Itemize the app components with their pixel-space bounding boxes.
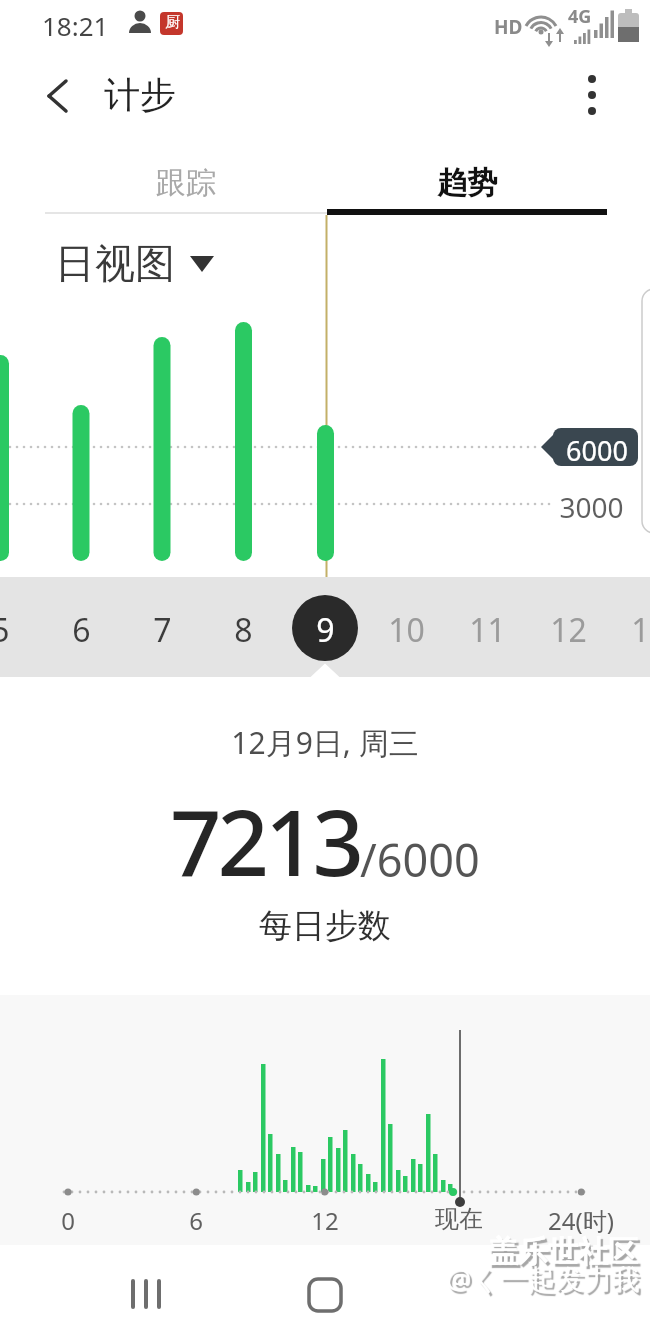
staticText: 7213 — [170, 780, 360, 900]
staticText: 5 — [0, 608, 10, 652]
button[interactable]: 9 — [303, 608, 347, 652]
button[interactable]: 11 — [465, 608, 509, 652]
button[interactable] — [100, 1265, 200, 1325]
button[interactable]: 7 — [140, 608, 184, 652]
staticText: 9 — [316, 608, 335, 652]
staticText: 3000 — [559, 488, 624, 526]
button[interactable] — [570, 70, 615, 122]
button[interactable]: 10 — [384, 608, 428, 652]
staticText: @く一起发力我 — [446, 1259, 640, 1297]
staticText: 盖乐世社区 — [488, 1233, 638, 1271]
staticText: 12 — [550, 608, 587, 652]
staticText: 24(时) — [548, 1204, 614, 1237]
staticText: 现在 — [435, 1204, 483, 1234]
staticText: 日视图 — [55, 238, 175, 288]
button[interactable]: 日视图 — [50, 236, 225, 286]
button[interactable]: 5 — [0, 608, 22, 652]
staticText: 8 — [234, 608, 253, 652]
staticText: 每日步数 — [259, 905, 391, 947]
staticText: 趋势 — [437, 164, 497, 202]
button[interactable] — [35, 70, 85, 122]
button[interactable]: 12 — [546, 608, 590, 652]
staticText: 10 — [388, 608, 425, 652]
button[interactable] — [455, 1265, 555, 1325]
staticText: 6 — [72, 608, 91, 652]
staticText: 跟踪 — [156, 164, 216, 202]
staticText: 计步 — [104, 72, 176, 117]
staticText: 11 — [469, 608, 506, 652]
staticText: 厨 — [165, 13, 180, 32]
staticText: 18:21 — [42, 8, 109, 43]
staticText: 6 — [189, 1204, 203, 1237]
button[interactable]: 8 — [221, 608, 265, 652]
staticText: HD — [494, 14, 523, 40]
button[interactable]: 跟踪 — [45, 152, 326, 214]
staticText: 12 — [311, 1204, 339, 1237]
staticText: 7 — [153, 608, 172, 652]
staticText: /6000 — [360, 829, 480, 890]
button[interactable] — [275, 1265, 375, 1325]
button[interactable]: 6 — [59, 608, 103, 652]
staticText: 13 — [631, 608, 650, 652]
staticText: 12月9日, 周三 — [231, 722, 419, 763]
staticText: 6000 — [566, 432, 628, 469]
button[interactable]: 趋势 — [326, 152, 607, 214]
staticText: 4G — [568, 4, 592, 29]
staticText: 0 — [61, 1204, 75, 1237]
